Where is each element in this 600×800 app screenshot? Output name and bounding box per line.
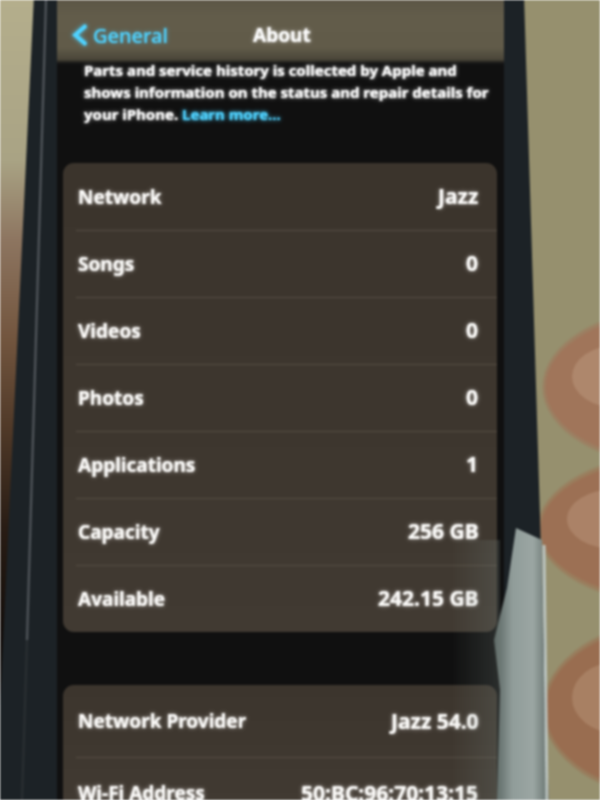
- staticText: General: [93, 22, 168, 49]
- staticText: 1: [466, 450, 479, 479]
- staticText: Network: [78, 184, 162, 210]
- staticText: Songs: [78, 251, 135, 277]
- staticText: 0: [466, 316, 479, 345]
- staticText: Applications: [78, 452, 196, 478]
- staticText: Network: [78, 184, 162, 210]
- staticText: Applications: [78, 452, 196, 478]
- button[interactable]: Applications: [63, 431, 497, 498]
- staticText: 0: [466, 383, 479, 412]
- staticText: Available: [78, 586, 166, 612]
- staticText: 256 GB: [408, 517, 479, 546]
- staticText: Parts and service history is collected b…: [84, 60, 457, 80]
- staticText: About: [253, 22, 311, 48]
- button[interactable]: Back to General: [70, 21, 168, 49]
- staticText: Capacity: [78, 519, 160, 545]
- staticText: 242.15 GB: [378, 584, 479, 613]
- button[interactable]: Videos: [63, 297, 497, 364]
- staticText: Jazz: [438, 182, 479, 211]
- button[interactable]: Capacity: [63, 498, 497, 565]
- staticText: 0: [466, 316, 479, 345]
- staticText: Network Provider: [78, 708, 247, 734]
- staticText: Capacity: [78, 519, 160, 545]
- staticText: Songs: [78, 251, 135, 277]
- staticText: Videos: [78, 318, 141, 344]
- staticText: Parts and service history is collected b…: [84, 60, 457, 80]
- staticText: 0: [466, 249, 479, 278]
- staticText: Network Provider: [78, 708, 247, 734]
- staticText: Videos: [78, 318, 141, 344]
- staticText: Jazz 54.0: [391, 707, 479, 736]
- button[interactable]: Photos: [63, 364, 497, 431]
- staticText: Photos: [78, 385, 144, 411]
- staticText: 0: [466, 383, 479, 412]
- staticText: Wi-Fi Address: [78, 780, 205, 800]
- staticText: 1: [466, 450, 479, 479]
- button[interactable]: Network: [63, 163, 497, 230]
- staticText: Jazz 54.0: [391, 707, 479, 736]
- staticText: your iPhone. Learn more...: [84, 104, 281, 124]
- staticText: Photos: [78, 385, 144, 411]
- other: Back to General: [70, 21, 90, 49]
- staticText: 256 GB: [408, 517, 479, 546]
- staticText: 50:BC:96:70:13:15: [301, 779, 479, 800]
- staticText: About: [253, 22, 311, 48]
- button[interactable]: Network Provider: [63, 685, 497, 757]
- staticText: Wi-Fi Address: [78, 780, 205, 800]
- staticText: 242.15 GB: [378, 584, 479, 613]
- staticText: shows information on the status and repa…: [84, 82, 489, 102]
- staticText: your iPhone. Learn more...: [84, 104, 281, 124]
- staticText: General: [93, 22, 168, 49]
- staticText: 50:BC:96:70:13:15: [301, 779, 479, 800]
- staticText: Available: [78, 586, 166, 612]
- button[interactable]: Available: [63, 565, 497, 632]
- staticText: shows information on the status and repa…: [84, 82, 489, 102]
- button[interactable]: Songs: [63, 230, 497, 297]
- staticText: 0: [466, 249, 479, 278]
- staticText: Jazz: [438, 182, 479, 211]
- button[interactable]: Wi-Fi Address: [63, 757, 497, 800]
